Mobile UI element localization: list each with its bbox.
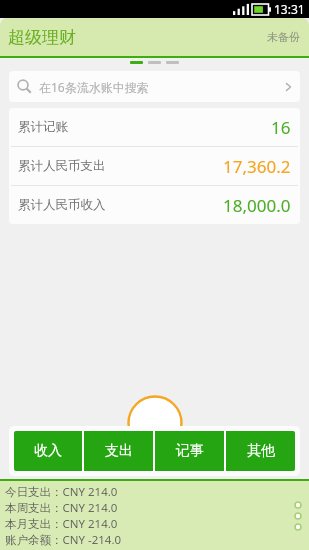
staticText: 本月支出：CNY 214.0 [5,516,118,532]
button[interactable]: 其他 [226,431,295,471]
button[interactable]: 累计人民币收入 [9,186,300,224]
button[interactable]: Option [294,512,302,520]
button[interactable]: 累计人民币支出 [9,147,300,185]
button[interactable]: 未备份 [267,30,300,44]
staticText: 18,000.0 [223,194,291,217]
staticText: 13:31 [274,1,305,17]
staticText: 今日支出：CNY 214.0 [5,484,118,500]
staticText: 累计人民币支出 [18,158,106,174]
button[interactable]: 累计记账 [9,108,300,146]
button[interactable]: 支出 [84,431,153,471]
staticText: 累计人民币收入 [18,197,106,213]
staticText: 记事 [176,442,204,460]
button[interactable]: 收入 [14,431,82,471]
button[interactable]: Option [294,501,302,509]
staticText: 支出 [105,442,133,460]
button[interactable] [130,61,143,64]
staticText: 账户余额：CNY -214.0 [5,532,122,548]
staticText: 16 [271,116,291,139]
button[interactable]: 超级理财 [8,27,76,48]
staticText: 17,360.2 [223,155,291,178]
button[interactable]: 记事 [155,431,224,471]
staticText: 收入 [34,442,62,460]
button[interactable] [166,61,179,64]
staticText: 未备份 [267,30,300,44]
staticText: 其他 [247,442,275,460]
button[interactable]: 在16条流水账中搜索 [9,71,300,102]
button[interactable] [148,61,161,64]
staticText: 超级理财 [8,27,76,48]
staticText: 本周支出：CNY 214.0 [5,500,118,516]
button[interactable]: Option [294,523,302,531]
staticText: 在16条流水账中搜索 [39,79,149,95]
staticText: 累计记账 [18,119,68,135]
button[interactable]: Add record [127,395,183,451]
